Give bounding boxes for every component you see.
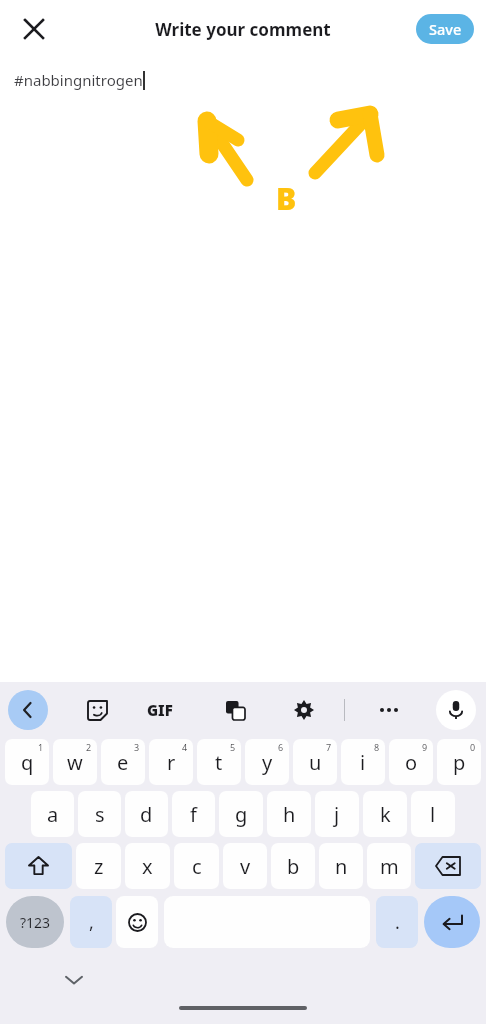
button[interactable] — [174, 843, 219, 889]
button[interactable] — [5, 739, 49, 785]
button[interactable]: Backspace — [415, 843, 481, 889]
staticText: r — [167, 749, 176, 776]
staticText: e — [117, 749, 129, 776]
staticText: q — [21, 749, 34, 776]
button[interactable] — [315, 791, 359, 837]
button[interactable] — [125, 843, 170, 889]
button[interactable] — [53, 739, 97, 785]
staticText: u — [309, 749, 322, 776]
button[interactable] — [125, 791, 168, 837]
button[interactable]: ?123 — [6, 896, 64, 948]
staticText: Write your comment — [155, 18, 331, 41]
button[interactable]: Enter — [424, 896, 480, 948]
button[interactable] — [389, 739, 433, 785]
staticText: 6 — [278, 741, 284, 753]
button[interactable] — [267, 791, 311, 837]
staticText: ?123 — [20, 913, 51, 932]
button[interactable] — [367, 843, 411, 889]
button[interactable]: Shift — [5, 843, 72, 889]
button[interactable]: GIF — [147, 700, 173, 720]
staticText: 2 — [86, 741, 92, 753]
button[interactable] — [319, 843, 363, 889]
staticText: #nabbingnitrogen — [14, 70, 143, 90]
staticText: l — [430, 801, 436, 828]
staticText: c — [192, 853, 202, 880]
button[interactable]: Translate — [216, 691, 254, 729]
staticText: 4 — [182, 741, 188, 753]
button[interactable]: More options — [370, 691, 408, 729]
button[interactable] — [31, 791, 74, 837]
staticText: m — [380, 853, 399, 880]
staticText: k — [380, 801, 391, 828]
button[interactable]: Hide keyboard — [56, 962, 92, 998]
button[interactable] — [219, 791, 263, 837]
staticText: a — [47, 801, 59, 828]
button[interactable] — [363, 791, 407, 837]
button[interactable] — [437, 739, 481, 785]
staticText: 8 — [374, 741, 380, 753]
button[interactable]: , — [70, 896, 112, 948]
staticText: y — [262, 749, 273, 776]
staticText: B — [276, 178, 297, 219]
staticText: d — [140, 801, 153, 828]
staticText: h — [283, 801, 296, 828]
button[interactable] — [172, 791, 215, 837]
staticText: i — [360, 749, 366, 776]
button[interactable]: Save — [416, 14, 474, 44]
button[interactable]: Emoji — [116, 896, 158, 948]
staticText: 0 — [470, 741, 476, 753]
button[interactable]: Back — [8, 690, 48, 730]
button[interactable]: Voice input — [436, 690, 476, 730]
staticText: 9 — [422, 741, 428, 753]
staticText: 3 — [134, 741, 140, 753]
staticText: 5 — [230, 741, 236, 753]
staticText: Save — [429, 19, 462, 39]
button[interactable] — [293, 739, 337, 785]
staticText: o — [405, 749, 418, 776]
staticText: n — [335, 853, 348, 880]
button[interactable] — [245, 739, 289, 785]
staticText: 7 — [326, 741, 332, 753]
staticText: g — [235, 801, 248, 828]
staticText: , — [89, 910, 94, 935]
staticText: v — [240, 853, 251, 880]
button[interactable]: Stickers — [78, 691, 116, 729]
staticText: t — [215, 749, 223, 776]
staticText: z — [94, 853, 104, 880]
staticText: w — [67, 749, 83, 776]
button[interactable] — [223, 843, 267, 889]
button[interactable]: Settings — [285, 691, 323, 729]
staticText: j — [334, 801, 340, 828]
button[interactable] — [149, 739, 193, 785]
button[interactable] — [101, 739, 145, 785]
staticText: s — [95, 801, 105, 828]
staticText: b — [287, 853, 300, 880]
button[interactable] — [341, 739, 385, 785]
staticText: 1 — [38, 741, 44, 753]
button[interactable] — [411, 791, 455, 837]
button[interactable] — [76, 843, 121, 889]
staticText: . — [395, 910, 400, 935]
button[interactable] — [271, 843, 315, 889]
staticText: x — [142, 853, 153, 880]
button[interactable]: Close — [12, 7, 56, 51]
button[interactable] — [197, 739, 241, 785]
button[interactable] — [78, 791, 121, 837]
staticText: f — [190, 801, 197, 828]
staticText: p — [453, 749, 466, 776]
button[interactable]: . — [376, 896, 418, 948]
